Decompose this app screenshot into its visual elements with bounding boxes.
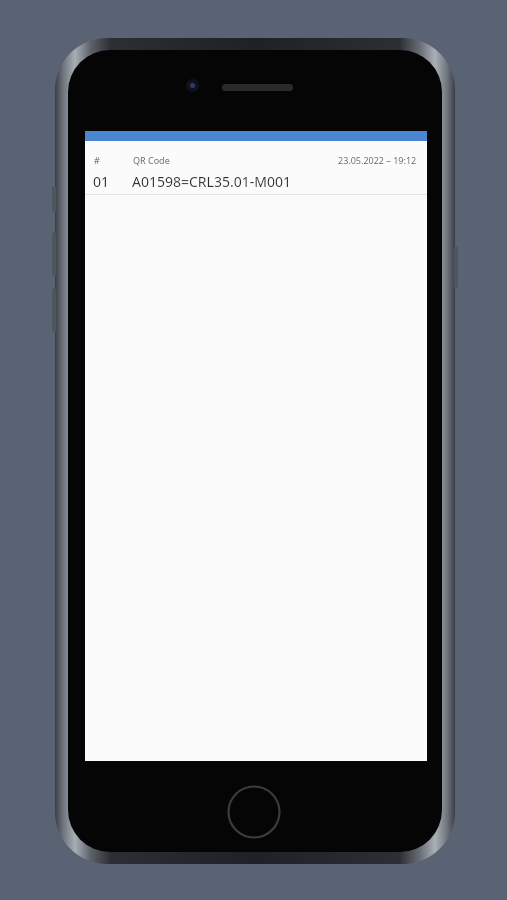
staticText: QR Code — [133, 154, 170, 166]
staticText: A01598=CRL35.01-M001 — [132, 172, 291, 191]
staticText: 23.05.2022 – 19:12 — [338, 154, 417, 166]
staticText: # — [94, 154, 100, 166]
button[interactable]: Home — [227, 785, 281, 839]
staticText: 01 — [93, 172, 110, 191]
button[interactable]: 01 — [85, 168, 427, 194]
